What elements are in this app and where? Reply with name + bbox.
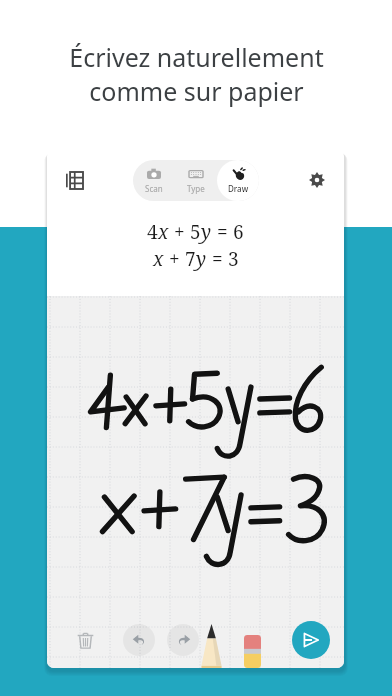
staticText: comme sur papier — [89, 74, 304, 108]
button[interactable]: Pencil — [195, 620, 227, 668]
staticText: 5 — [190, 219, 201, 245]
button[interactable]: Delete — [68, 623, 102, 657]
staticText: y — [196, 246, 207, 272]
button[interactable]: Redo — [167, 624, 199, 656]
staticText: = — [212, 219, 233, 245]
staticText: 4 — [147, 219, 158, 245]
button[interactable]: Scan — [133, 160, 175, 201]
button[interactable]: Settings — [298, 161, 336, 199]
button[interactable]: Send — [292, 621, 330, 659]
button[interactable]: Notes list — [55, 161, 93, 199]
staticText: = — [207, 246, 228, 272]
staticText: + — [169, 219, 190, 245]
staticText: + — [164, 246, 185, 272]
staticText: Type — [187, 183, 205, 194]
staticText: x — [153, 246, 164, 272]
staticText: Draw — [228, 183, 249, 194]
staticText: Écrivez naturellement — [69, 40, 324, 74]
staticText: y — [201, 219, 212, 245]
button[interactable]: Type — [175, 160, 217, 201]
staticText: 6 — [233, 219, 244, 245]
staticText: Scan — [145, 183, 163, 194]
staticText: 7 — [185, 246, 196, 272]
staticText: x — [158, 219, 169, 245]
button[interactable]: Draw — [217, 160, 259, 201]
button[interactable]: Undo — [123, 624, 155, 656]
button[interactable]: Eraser — [237, 624, 267, 668]
staticText: 3 — [228, 246, 239, 272]
